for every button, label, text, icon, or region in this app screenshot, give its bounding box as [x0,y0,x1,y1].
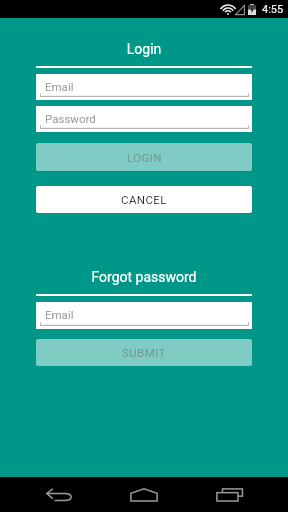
staticText: CANCEL [121,193,167,206]
staticText: Login [36,41,252,57]
staticText: Password [45,112,96,125]
staticText: LOGIN [127,151,162,164]
button[interactable]: Home [120,477,168,512]
staticText: Email [45,80,74,93]
button[interactable]: Email [36,74,252,100]
button[interactable]: SUBMIT [36,339,252,366]
button[interactable]: CANCEL [36,186,252,213]
button[interactable]: Password [36,106,252,132]
button[interactable]: Recent apps [206,477,254,512]
staticText: Forgot password [36,269,252,285]
staticText: Email [45,308,74,321]
button[interactable]: Email [36,302,252,329]
staticText: SUBMIT [122,346,166,359]
button[interactable]: LOGIN [36,143,252,171]
staticText: 4:55 [262,3,284,16]
button[interactable]: Back [34,477,82,512]
